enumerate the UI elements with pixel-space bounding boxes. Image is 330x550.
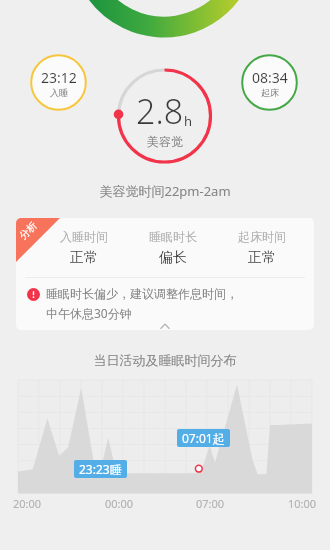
staticText: 美容觉 <box>147 134 183 149</box>
staticText: 08:34 <box>252 68 288 87</box>
staticText: 睡眠时长偏少，建议调整作息时间， <box>46 286 238 301</box>
staticText: 分析 <box>16 219 40 242</box>
staticText: 正常 <box>248 249 276 267</box>
button[interactable]: 23:23睡 <box>74 460 127 478</box>
staticText: 00:00 <box>105 496 134 511</box>
button[interactable]: 07:01起 <box>177 429 230 447</box>
staticText: 当日活动及睡眠时间分布 <box>0 352 330 368</box>
button[interactable]: 入睡时间 <box>16 218 314 330</box>
staticText: 偏长 <box>159 249 187 267</box>
staticText: h <box>184 112 193 130</box>
staticText: 23:12 <box>41 68 77 87</box>
staticText: 10:00 <box>288 496 317 511</box>
staticText: 中午休息30分钟 <box>46 305 132 321</box>
staticText: 睡眠时长 <box>149 229 197 244</box>
staticText: 07:00 <box>196 496 225 511</box>
staticText: 入睡时间 <box>60 229 108 244</box>
staticText: 07:01起 <box>182 430 225 446</box>
staticText: 美容觉时间22pm-2am <box>0 182 330 200</box>
staticText: 20:00 <box>13 496 42 511</box>
staticText: 入睡 <box>50 87 68 98</box>
staticText: 2.8 <box>136 88 184 134</box>
staticText: 23:23睡 <box>79 461 122 477</box>
button[interactable]: 23:12 <box>30 54 87 111</box>
staticText: 起床时间 <box>238 229 286 244</box>
button[interactable]: 08:34 <box>241 54 298 111</box>
staticText: 起床 <box>261 87 279 98</box>
staticText: 正常 <box>70 249 98 267</box>
